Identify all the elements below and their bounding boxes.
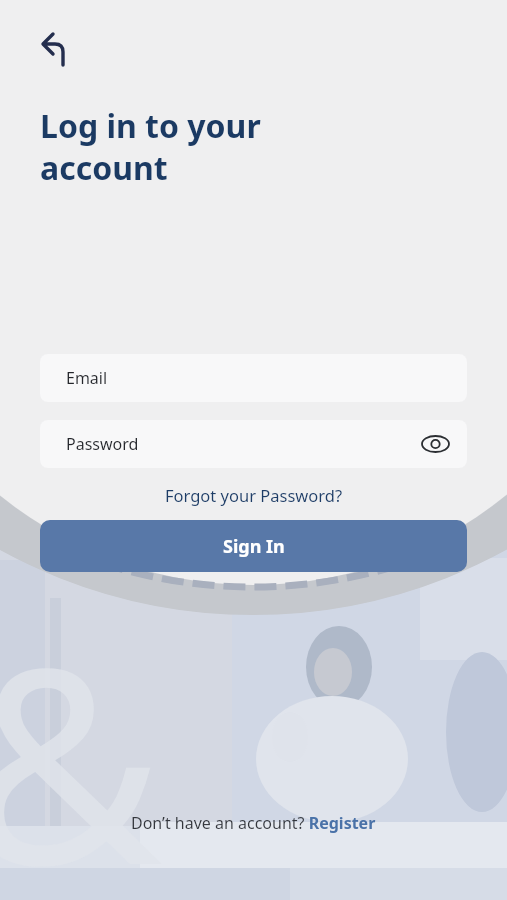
button[interactable]: Don’t have an account? Register [131,812,376,834]
button[interactable]: Forgot your Password? [165,484,343,506]
button[interactable] [30,26,76,72]
staticText: Email [66,367,108,389]
staticText: Password [66,433,139,455]
button[interactable]: Password [40,420,467,468]
staticText: & [0,575,163,900]
button[interactable]: Email [40,354,467,402]
button[interactable]: Sign In [40,520,467,572]
staticText: Sign In [223,534,285,559]
staticText: Log in to your account [40,104,261,189]
